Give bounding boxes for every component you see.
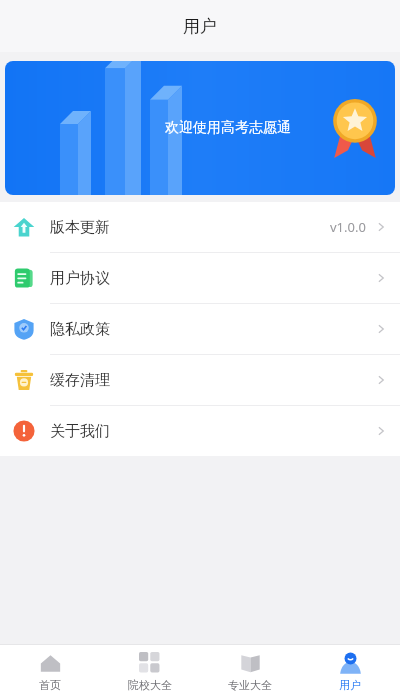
staticText: 首页 bbox=[39, 678, 61, 692]
staticText: 隐私政策 bbox=[50, 320, 110, 339]
button[interactable]: 用户协议 bbox=[0, 253, 400, 304]
staticText: 缓存清理 bbox=[50, 371, 110, 390]
button[interactable]: 院校大全 bbox=[100, 644, 200, 700]
button[interactable]: 专业大全 bbox=[200, 644, 300, 700]
staticText: 用户 bbox=[183, 16, 217, 37]
staticText: 用户协议 bbox=[50, 269, 110, 288]
button[interactable]: 首页 bbox=[0, 644, 100, 700]
button[interactable]: 用户 bbox=[300, 644, 400, 700]
staticText: 用户 bbox=[339, 678, 361, 692]
button[interactable]: 隐私政策 bbox=[0, 304, 400, 355]
staticText: 院校大全 bbox=[128, 678, 172, 692]
staticText: 欢迎使用高考志愿通 bbox=[165, 119, 291, 137]
button[interactable]: 关于我们 bbox=[0, 406, 400, 456]
staticText: 专业大全 bbox=[228, 678, 272, 692]
staticText: 版本更新 bbox=[50, 218, 110, 237]
staticText: 关于我们 bbox=[50, 422, 110, 441]
staticText: v1.0.0 bbox=[330, 218, 366, 236]
button[interactable]: 版本更新 bbox=[0, 202, 400, 253]
button[interactable]: 缓存清理 bbox=[0, 355, 400, 406]
button[interactable]: 欢迎使用高考志愿通 bbox=[5, 61, 395, 195]
